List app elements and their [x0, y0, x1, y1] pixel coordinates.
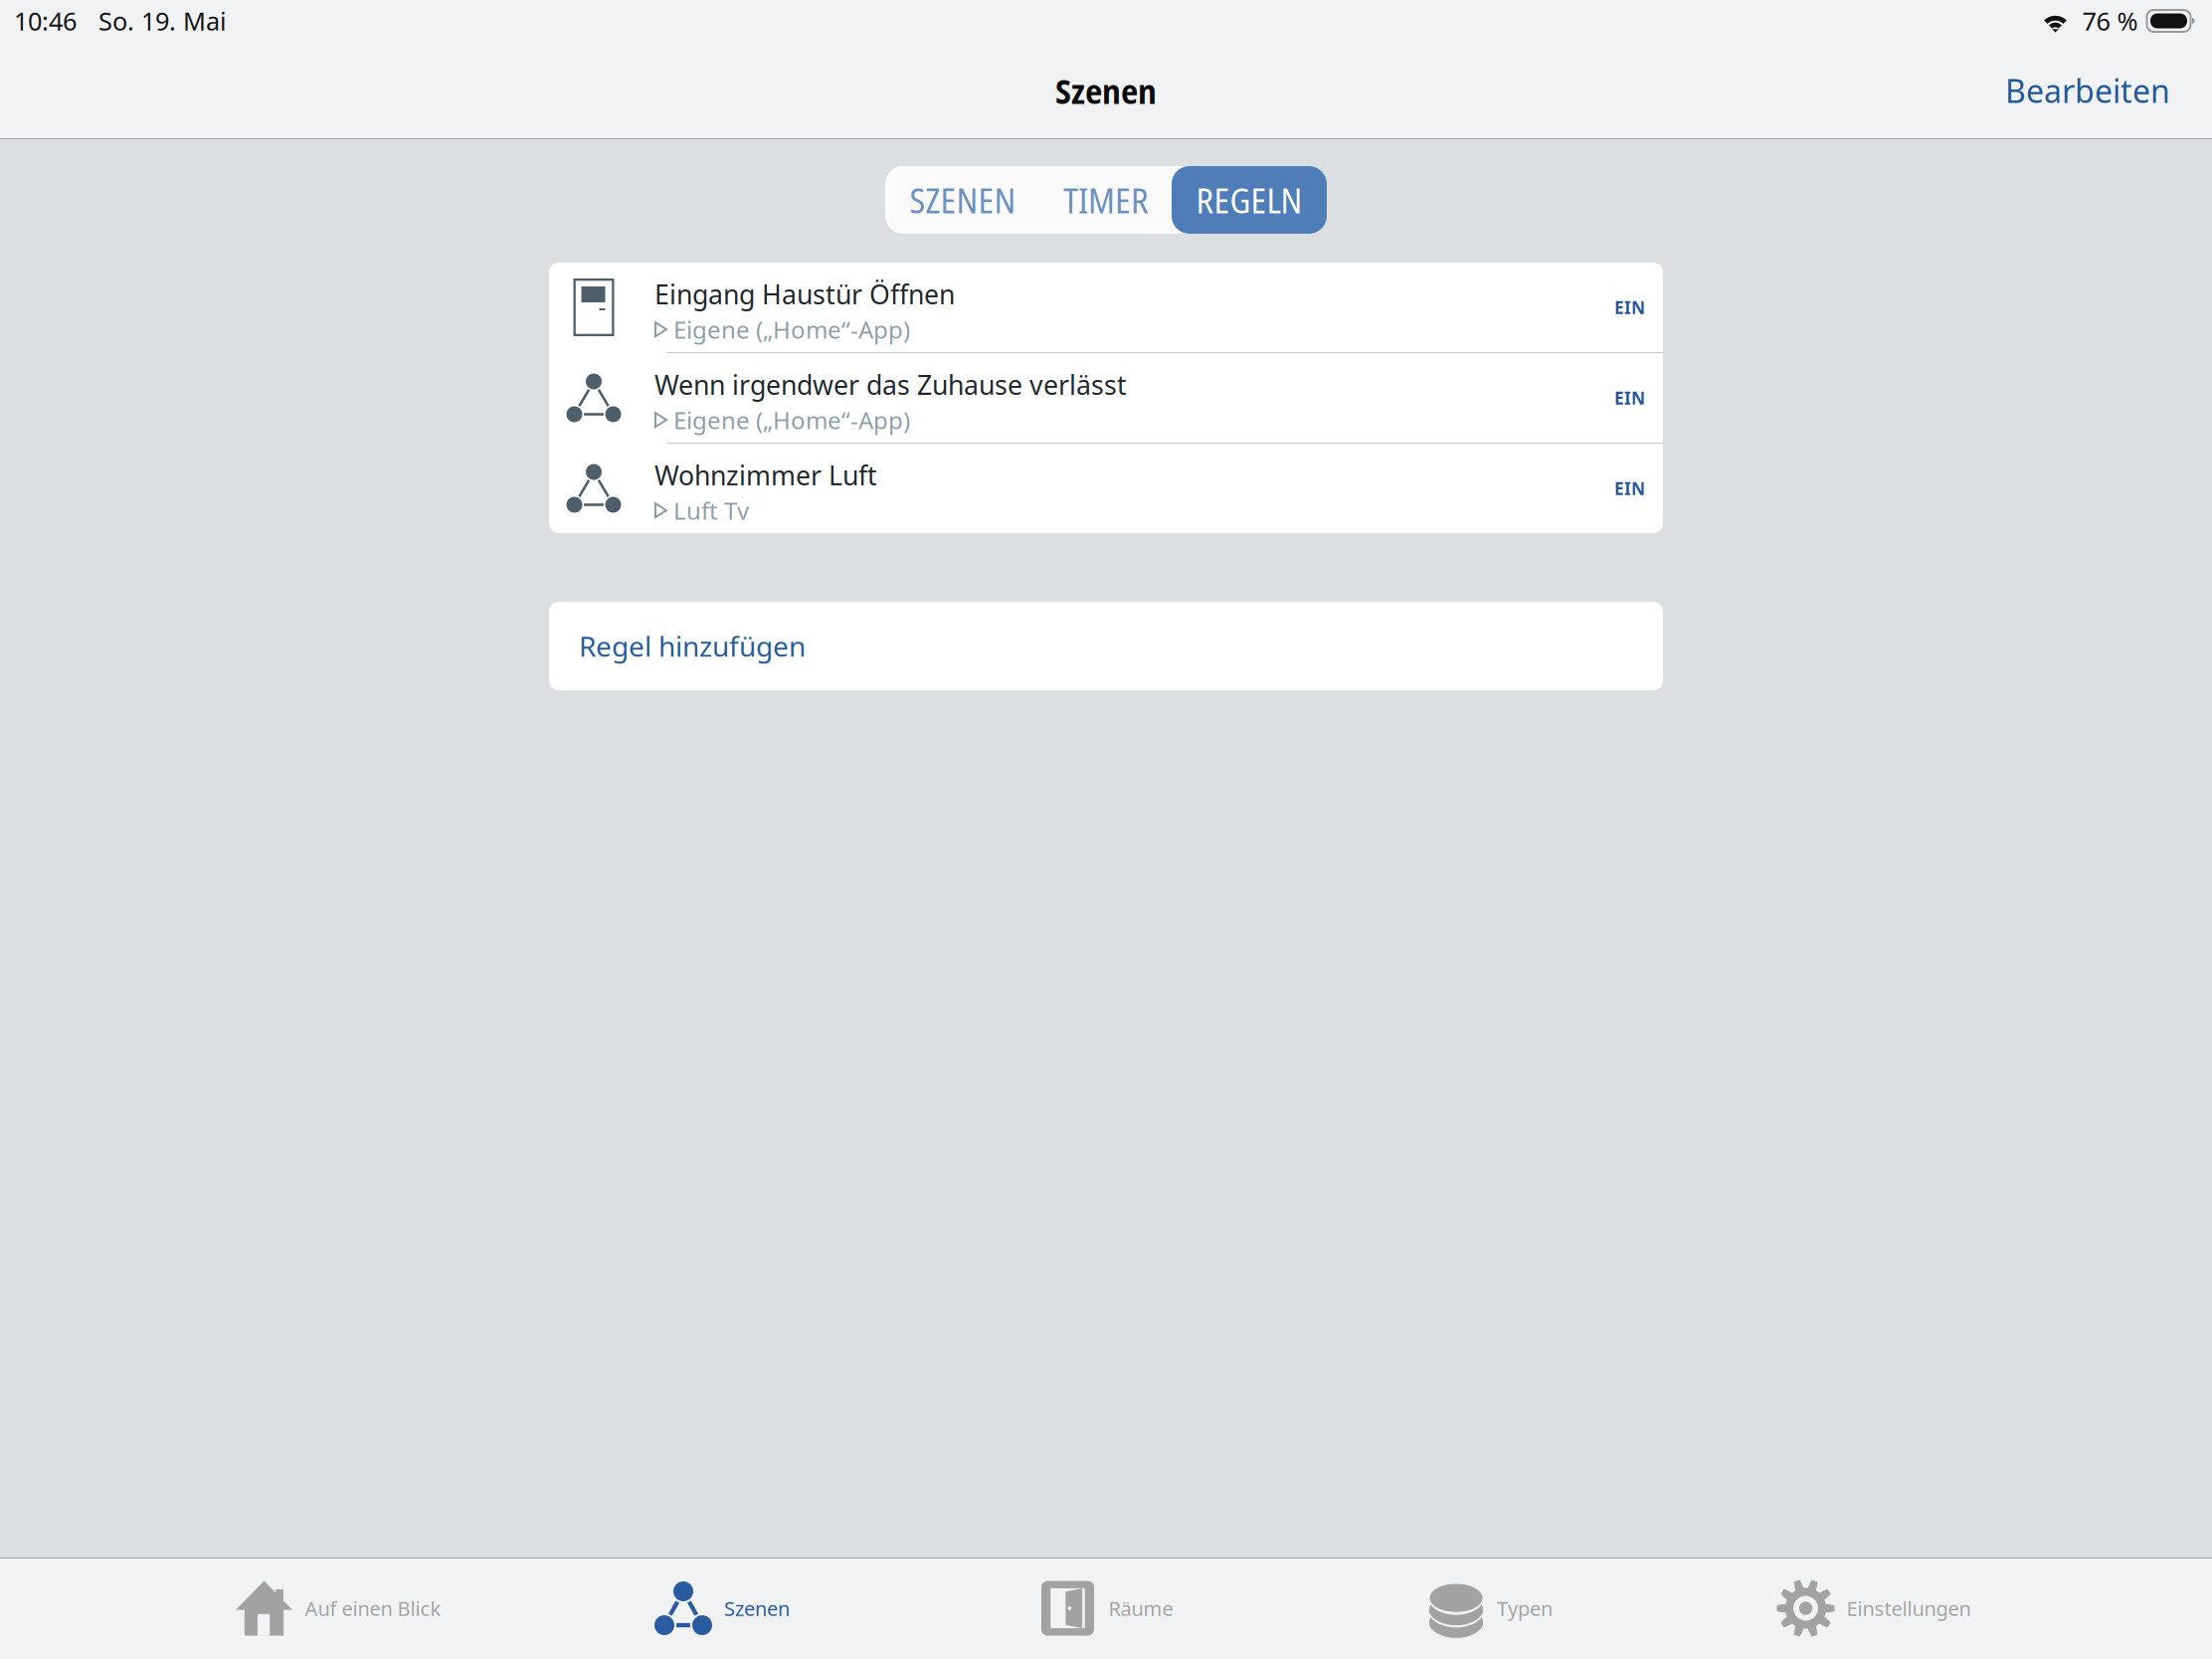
- staticText: TIMER: [1063, 176, 1149, 223]
- staticText: Wohnzimmer Luft: [654, 457, 877, 493]
- staticText: REGELN: [1196, 176, 1302, 223]
- button[interactable]: Bearbeiten: [1991, 57, 2184, 124]
- staticText: Auf einen Blick: [305, 1595, 441, 1622]
- staticText: Räume: [1108, 1595, 1173, 1622]
- staticText: Eigene („Home“-App): [673, 313, 910, 346]
- staticText: EIN: [1614, 296, 1645, 319]
- staticText: So. 19. Mai: [98, 4, 227, 38]
- staticText: 76 %: [2082, 4, 2138, 38]
- staticText: EIN: [1614, 477, 1645, 500]
- button[interactable]: Eingang Haustür Öffnen: [549, 263, 1663, 352]
- button[interactable]: Szenen: [530, 1559, 914, 1658]
- staticText: EIN: [1614, 386, 1645, 410]
- button[interactable]: Regel hinzufügen: [549, 602, 1663, 690]
- staticText: Eigene („Home“-App): [673, 404, 910, 436]
- button[interactable]: Räume: [914, 1559, 1298, 1658]
- staticText: SZENEN: [910, 176, 1016, 223]
- button[interactable]: REGELN: [1172, 166, 1327, 234]
- staticText: Szenen: [724, 1595, 790, 1622]
- staticText: Szenen: [1055, 67, 1157, 114]
- staticText: Bearbeiten: [2005, 69, 2170, 112]
- staticText: Wenn irgendwer das Zuhause verlässt: [654, 367, 1127, 403]
- staticText: Regel hinzufügen: [579, 627, 806, 665]
- staticText: Luft Tv: [673, 494, 749, 527]
- staticText: Einstellungen: [1846, 1595, 1971, 1622]
- button[interactable]: Einstellungen: [1682, 1559, 2066, 1658]
- staticText: 10:46: [14, 4, 77, 38]
- button[interactable]: Auf einen Blick: [146, 1559, 530, 1658]
- staticText: Typen: [1497, 1595, 1553, 1622]
- button[interactable]: SZENEN: [885, 166, 1040, 234]
- staticText: Eingang Haustür Öffnen: [654, 276, 955, 312]
- button[interactable]: Wenn irgendwer das Zuhause verlässt: [549, 353, 1663, 443]
- button[interactable]: TIMER: [1040, 166, 1172, 234]
- button[interactable]: Wohnzimmer Luft: [549, 444, 1663, 533]
- button[interactable]: Typen: [1298, 1559, 1682, 1658]
